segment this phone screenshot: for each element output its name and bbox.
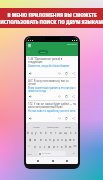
button[interactable]: Home — [50, 158, 55, 163]
button[interactable]: немецкий — [47, 125, 59, 128]
button[interactable]: Share — [71, 116, 76, 121]
button[interactable]: 467. Я хочу пользоваться, вас со целой з… — [26, 78, 78, 101]
button[interactable]: Share — [71, 94, 76, 99]
button[interactable]: ы — [33, 136, 38, 143]
button[interactable]: Play audio — [28, 71, 33, 76]
button[interactable]: Play audio — [28, 116, 33, 121]
button[interactable]: д — [64, 136, 68, 143]
button[interactable]: поиск — [38, 50, 48, 54]
staticText: 467. Я хочу пользоваться, вас со целой з… — [28, 79, 76, 85]
staticText: е — [45, 131, 47, 135]
button[interactable]: Copy — [64, 94, 69, 99]
button[interactable]: з — [68, 129, 73, 136]
button[interactable]: Shift — [26, 143, 32, 150]
staticText: ф — [29, 138, 32, 142]
button[interactable]: н — [48, 129, 53, 136]
button[interactable]: Copy — [64, 116, 69, 121]
button[interactable]: Recents — [64, 158, 69, 163]
button[interactable]: а — [43, 136, 48, 143]
button[interactable]: о — [56, 136, 60, 143]
staticText: 1:46 "Приложение умный в следующие три н… — [28, 57, 76, 63]
staticText: ?12 — [28, 152, 32, 155]
button[interactable]: Share — [71, 71, 76, 76]
button[interactable]: Ввод — [65, 125, 71, 128]
button[interactable]: е — [43, 129, 48, 136]
button[interactable]: л — [60, 136, 64, 143]
staticText: ь — [61, 145, 63, 149]
button[interactable]: Back — [27, 50, 31, 54]
staticText: д — [65, 138, 67, 142]
button[interactable]: и — [52, 143, 56, 150]
button[interactable]: ч — [37, 143, 42, 150]
staticText: В МЕНЮ ПРИЛОЖЕНИЯ ВЫ СМОЖЕТЕ — [7, 12, 97, 18]
staticText: ⌫ — [73, 145, 77, 148]
staticText: м — [48, 145, 51, 149]
staticText: р — [53, 138, 55, 142]
button[interactable]: щ — [63, 129, 68, 136]
button[interactable]: к — [38, 129, 43, 136]
staticText: в — [40, 138, 42, 142]
staticText: у — [35, 131, 37, 135]
button[interactable]: Favorite — [57, 116, 62, 121]
button[interactable]: Favorite — [57, 71, 62, 76]
staticText: Всем заметным нравится это как вы с нами… — [28, 86, 76, 92]
button[interactable]: Symbols — [27, 151, 32, 156]
staticText: з — [70, 131, 72, 135]
staticText: э — [73, 138, 75, 142]
button[interactable]: ц — [30, 129, 34, 136]
button[interactable]: Play audio — [28, 94, 33, 99]
button[interactable]: й — [26, 129, 30, 136]
button[interactable]: Back — [35, 158, 40, 163]
button[interactable]: в — [38, 136, 43, 143]
staticText: поиск — [40, 51, 47, 54]
staticText: ш — [59, 131, 62, 135]
button[interactable]: Copy — [64, 71, 69, 76]
staticText: я — [34, 145, 36, 149]
button[interactable]: 1:46 "Приложение умный в следующие три н… — [26, 56, 78, 78]
button[interactable]: у — [34, 129, 38, 136]
button[interactable]: слово — [33, 125, 40, 128]
staticText: Ввод — [65, 125, 71, 128]
button[interactable]: ю — [68, 143, 72, 150]
button[interactable]: Favorite — [57, 94, 62, 99]
button[interactable]: п — [48, 136, 52, 143]
staticText: слово — [33, 125, 40, 128]
button[interactable]: Backspace — [72, 143, 78, 150]
button[interactable]: с — [42, 143, 47, 150]
button[interactable]: ш — [58, 129, 63, 136]
button[interactable]: м — [47, 143, 52, 150]
staticText: Заметное, когда бы было бывает — [28, 64, 70, 68]
staticText: ц — [31, 131, 33, 135]
button[interactable]: г — [53, 129, 58, 136]
staticText: Русский — [42, 152, 51, 155]
button[interactable]: я — [32, 143, 37, 150]
staticText: ю — [69, 145, 72, 149]
staticText: х — [75, 131, 77, 135]
button[interactable]: Space — [38, 151, 66, 156]
staticText: Но как зовет и заработку зал его зато. — [28, 109, 76, 113]
staticText: щ — [64, 131, 67, 135]
staticText: л — [61, 138, 63, 142]
staticText: ИСПОЛЬЗОВАТЬ ПОИСК ПО ДВУМ ЯЗЫКАМ — [0, 19, 103, 25]
button[interactable]: ь — [60, 143, 64, 150]
staticText: к — [40, 131, 42, 135]
button[interactable]: х — [73, 129, 78, 136]
staticText: и — [53, 145, 55, 149]
button[interactable]: Menu — [27, 43, 31, 47]
button[interactable]: Enter — [72, 151, 77, 156]
button[interactable]: 572. У нас он самых будет добей — ты мен… — [26, 101, 78, 123]
button[interactable]: ф — [28, 136, 33, 143]
staticText: рус-англ — [67, 43, 77, 46]
staticText: н — [50, 131, 52, 135]
button[interactable]: р — [52, 136, 56, 143]
staticText: й — [27, 131, 29, 135]
button[interactable]: б — [64, 143, 68, 150]
button[interactable]: ж — [68, 136, 72, 143]
button[interactable]: э — [72, 136, 76, 143]
staticText: ч — [39, 145, 41, 149]
button[interactable]: т — [56, 143, 60, 150]
